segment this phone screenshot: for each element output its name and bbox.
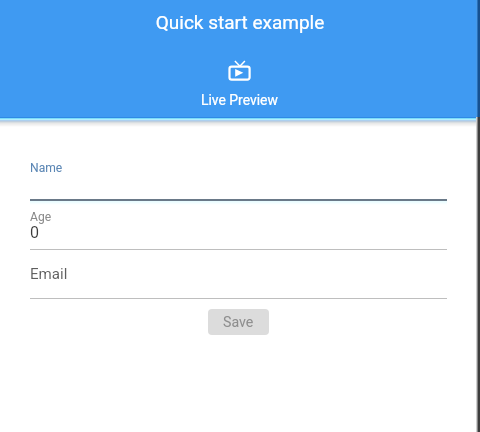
button[interactable]: Save — [208, 309, 269, 335]
staticText: Age — [30, 210, 52, 224]
button[interactable]: Live Preview — [195, 58, 284, 110]
button[interactable]: Age field — [30, 206, 447, 250]
staticText: 0 — [30, 223, 39, 242]
button[interactable]: Email field — [30, 256, 447, 299]
button[interactable]: Name field — [30, 150, 447, 205]
staticText: Save — [223, 314, 254, 331]
staticText: Live Preview — [201, 92, 278, 108]
staticText: Quick start example — [0, 11, 480, 33]
staticText: Email — [30, 265, 68, 283]
staticText: Name — [30, 161, 63, 175]
